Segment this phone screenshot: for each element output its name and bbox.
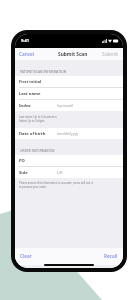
staticText: Index bbox=[19, 103, 31, 109]
button[interactable]: Clear bbox=[15, 251, 37, 262]
staticText: (optional) bbox=[57, 103, 74, 108]
staticText: First initial bbox=[19, 79, 42, 85]
staticText: Last name: Up to 3 characters. Index: Up… bbox=[19, 115, 119, 123]
button[interactable]: First initial bbox=[15, 76, 123, 87]
button[interactable]: Cancel bbox=[15, 49, 38, 60]
button[interactable]: Submit bbox=[98, 49, 123, 60]
staticText: Submit bbox=[102, 51, 119, 58]
staticText: Recall bbox=[104, 253, 118, 260]
button[interactable]: Date of birth bbox=[15, 128, 123, 139]
staticText: Please ensure this information is accura… bbox=[19, 181, 119, 189]
button[interactable]: Recall bbox=[99, 251, 123, 262]
staticText: Last name bbox=[19, 91, 41, 97]
staticText: Cancel bbox=[19, 51, 34, 58]
staticText: mm/dd/yyyy bbox=[57, 131, 79, 136]
staticText: L/R bbox=[57, 170, 63, 175]
button[interactable]: PO bbox=[15, 155, 123, 166]
staticText: Submit Scan bbox=[58, 51, 88, 58]
staticText: PO bbox=[19, 158, 25, 164]
staticText: Side bbox=[19, 170, 28, 176]
button[interactable]: Last name bbox=[15, 88, 123, 99]
staticText: ORDER INFORMATION bbox=[20, 148, 55, 152]
staticText: 9:41 bbox=[21, 38, 30, 44]
button[interactable]: Side bbox=[15, 167, 123, 178]
staticText: Clear bbox=[20, 253, 32, 260]
button[interactable]: Index bbox=[15, 100, 123, 111]
staticText: Date of birth bbox=[19, 131, 46, 137]
staticText: PATIENT/SCAN INFORMATION bbox=[20, 69, 67, 73]
